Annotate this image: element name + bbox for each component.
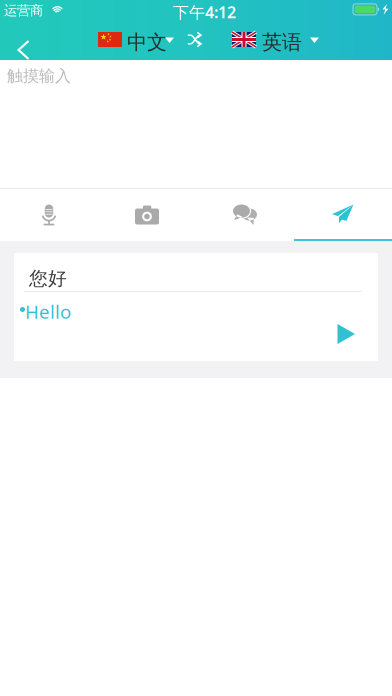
button[interactable]: Voice input — [0, 189, 98, 241]
button[interactable]: Translate — [294, 189, 392, 241]
button[interactable]: Play pronunciation — [14, 253, 48, 287]
button[interactable]: Back — [0, 20, 48, 60]
staticText: 触摸输入 — [7, 66, 71, 86]
staticText: 下午4:12 — [173, 1, 236, 23]
button[interactable]: 中文 — [0, 20, 82, 60]
button[interactable]: Swap languages — [0, 20, 34, 60]
staticText: 英语 — [262, 30, 302, 55]
button[interactable]: Camera input — [98, 189, 196, 241]
staticText: Hello — [25, 299, 71, 324]
button[interactable]: Conversation — [196, 189, 294, 241]
staticText: 运营商 — [4, 2, 43, 19]
staticText: 您好 — [29, 267, 67, 290]
button[interactable]: 英语 — [0, 20, 92, 60]
staticText: 中文 — [127, 30, 167, 55]
